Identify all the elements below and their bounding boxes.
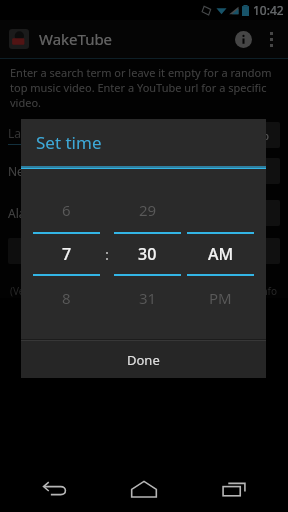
button[interactable] <box>8 238 68 264</box>
staticText: Lady Gaga <box>8 125 68 141</box>
staticText: (Version 1.0) <box>10 284 68 298</box>
staticText: Enter a search term or leave it empty fo… <box>10 65 278 110</box>
staticText: AM <box>208 243 234 265</box>
button[interactable]: Recent apps <box>199 465 269 512</box>
staticText: Set time <box>36 131 102 154</box>
staticText: Info <box>258 284 278 298</box>
staticText: Set <box>250 164 267 179</box>
button[interactable]: Info <box>226 22 260 56</box>
button[interactable]: Back <box>20 465 90 512</box>
staticText: 10:42 <box>253 2 284 18</box>
staticText: 6 <box>62 200 71 220</box>
staticText: 29 <box>139 200 157 220</box>
staticText: 31 <box>139 288 157 308</box>
staticText: PM <box>209 288 232 308</box>
staticText: 7 <box>62 243 72 265</box>
button[interactable]: More options <box>260 22 282 56</box>
staticText: : <box>105 244 110 264</box>
button[interactable]: Done <box>21 341 266 378</box>
button[interactable]: 6 <box>33 188 100 320</box>
staticText: Help <box>245 128 269 143</box>
staticText: WakeTube <box>39 29 113 49</box>
button[interactable] <box>236 200 280 226</box>
staticText: 8 <box>62 288 71 308</box>
staticText: New alarm <box>8 163 69 179</box>
button[interactable]: 29 <box>114 188 181 320</box>
staticText: Alarm list <box>8 205 62 221</box>
staticText: 30 <box>138 243 157 265</box>
button[interactable]: Help <box>234 122 280 148</box>
staticText: Done <box>127 351 160 369</box>
button[interactable] <box>236 238 280 264</box>
button[interactable]: AM <box>187 188 254 320</box>
button[interactable]: Home <box>109 465 179 512</box>
button[interactable]: Set <box>236 158 280 184</box>
